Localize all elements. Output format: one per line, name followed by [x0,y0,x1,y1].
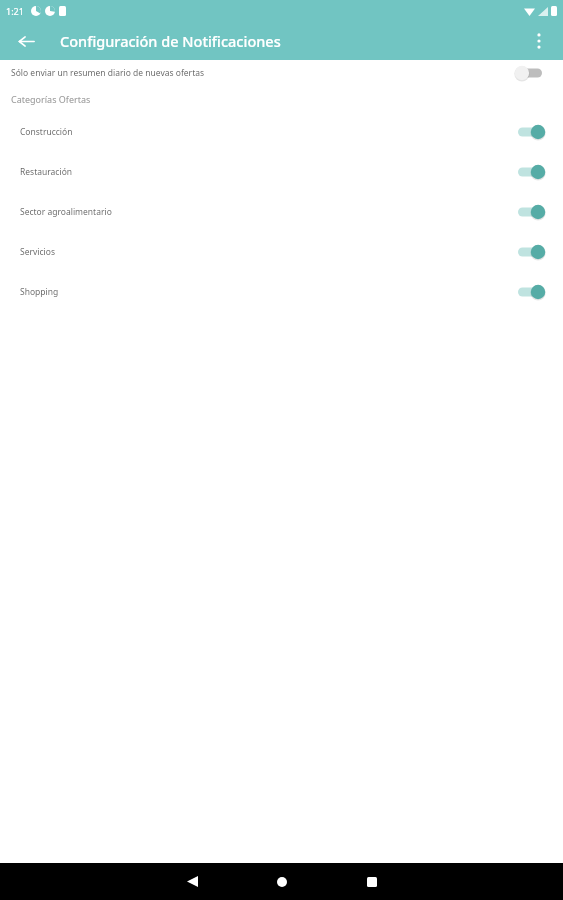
staticText: Shopping [20,286,516,298]
staticText: 1:21 [6,5,24,17]
button[interactable]: Back [162,863,222,900]
staticText: Configuración de Notificaciones [60,31,281,51]
button[interactable]: On [516,122,550,142]
button[interactable]: On [516,202,550,222]
button[interactable]: Restauración [0,152,563,192]
staticText: Construcción [20,126,516,138]
button[interactable]: On [516,162,550,182]
staticText: Categorías Ofertas [11,93,91,105]
button[interactable]: On [516,282,550,302]
staticText: Sector agroalimentario [20,206,516,218]
staticText: Sólo enviar un resumen diario de nuevas … [11,67,516,79]
button[interactable]: Recent apps [342,863,402,900]
button[interactable]: More options [523,25,555,57]
button[interactable]: Servicios [0,232,563,272]
button[interactable]: Home [252,863,312,900]
button[interactable]: Back [10,25,42,57]
staticText: Restauración [20,166,516,178]
button[interactable]: Construcción [0,112,563,152]
button[interactable]: Sólo enviar un resumen diario de nuevas … [0,60,563,86]
button[interactable]: Shopping [0,272,563,312]
button[interactable]: On [516,242,550,262]
button[interactable]: Sector agroalimentario [0,192,563,232]
staticText: Servicios [20,246,516,258]
button[interactable]: Off [516,63,550,83]
